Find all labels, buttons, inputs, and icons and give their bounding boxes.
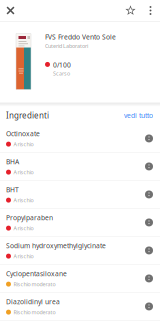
staticText: Cyclopentasiloxane [6,269,67,278]
staticText: A rischio [13,141,33,148]
button[interactable]: BHT [0,181,160,209]
button[interactable]: More options [141,0,160,21]
button[interactable]: Close [0,0,21,21]
staticText: Propylparaben [6,213,53,222]
button[interactable]: Cyclopentasiloxane [0,265,160,293]
staticText: A rischio [13,197,33,204]
staticText: 0/100 [53,60,71,69]
button[interactable]: Diazolidinyl urea [0,293,160,321]
staticText: BHT [6,185,19,194]
button[interactable]: Add to favourites [120,0,141,21]
button[interactable]: Propylparaben [0,209,160,237]
staticText: Diazolidinyl urea [6,297,60,306]
staticText: Ingredienti [6,110,49,121]
staticText: Scarso [53,70,70,77]
button[interactable]: BHA [0,153,160,181]
button[interactable]: Sodium hydroxymethylglycinate [0,237,160,265]
staticText: A rischio [13,169,33,176]
staticText: Rischio moderato [13,281,55,288]
button[interactable]: Octinoxate [0,125,160,153]
staticText: FVS Freddo Vento Sole [45,32,116,41]
staticText: Octinoxate [6,129,40,138]
staticText: BHA [6,157,19,166]
staticText: A rischio [13,253,33,260]
button[interactable]: vedi tutto [124,111,153,120]
staticText: Rischio moderato [13,309,55,316]
staticText: A rischio [13,225,33,232]
staticText: vedi tutto [124,111,153,120]
staticText: Cuterid Laboratori [45,42,88,49]
staticText: Sodium hydroxymethylglycinate [6,241,106,250]
